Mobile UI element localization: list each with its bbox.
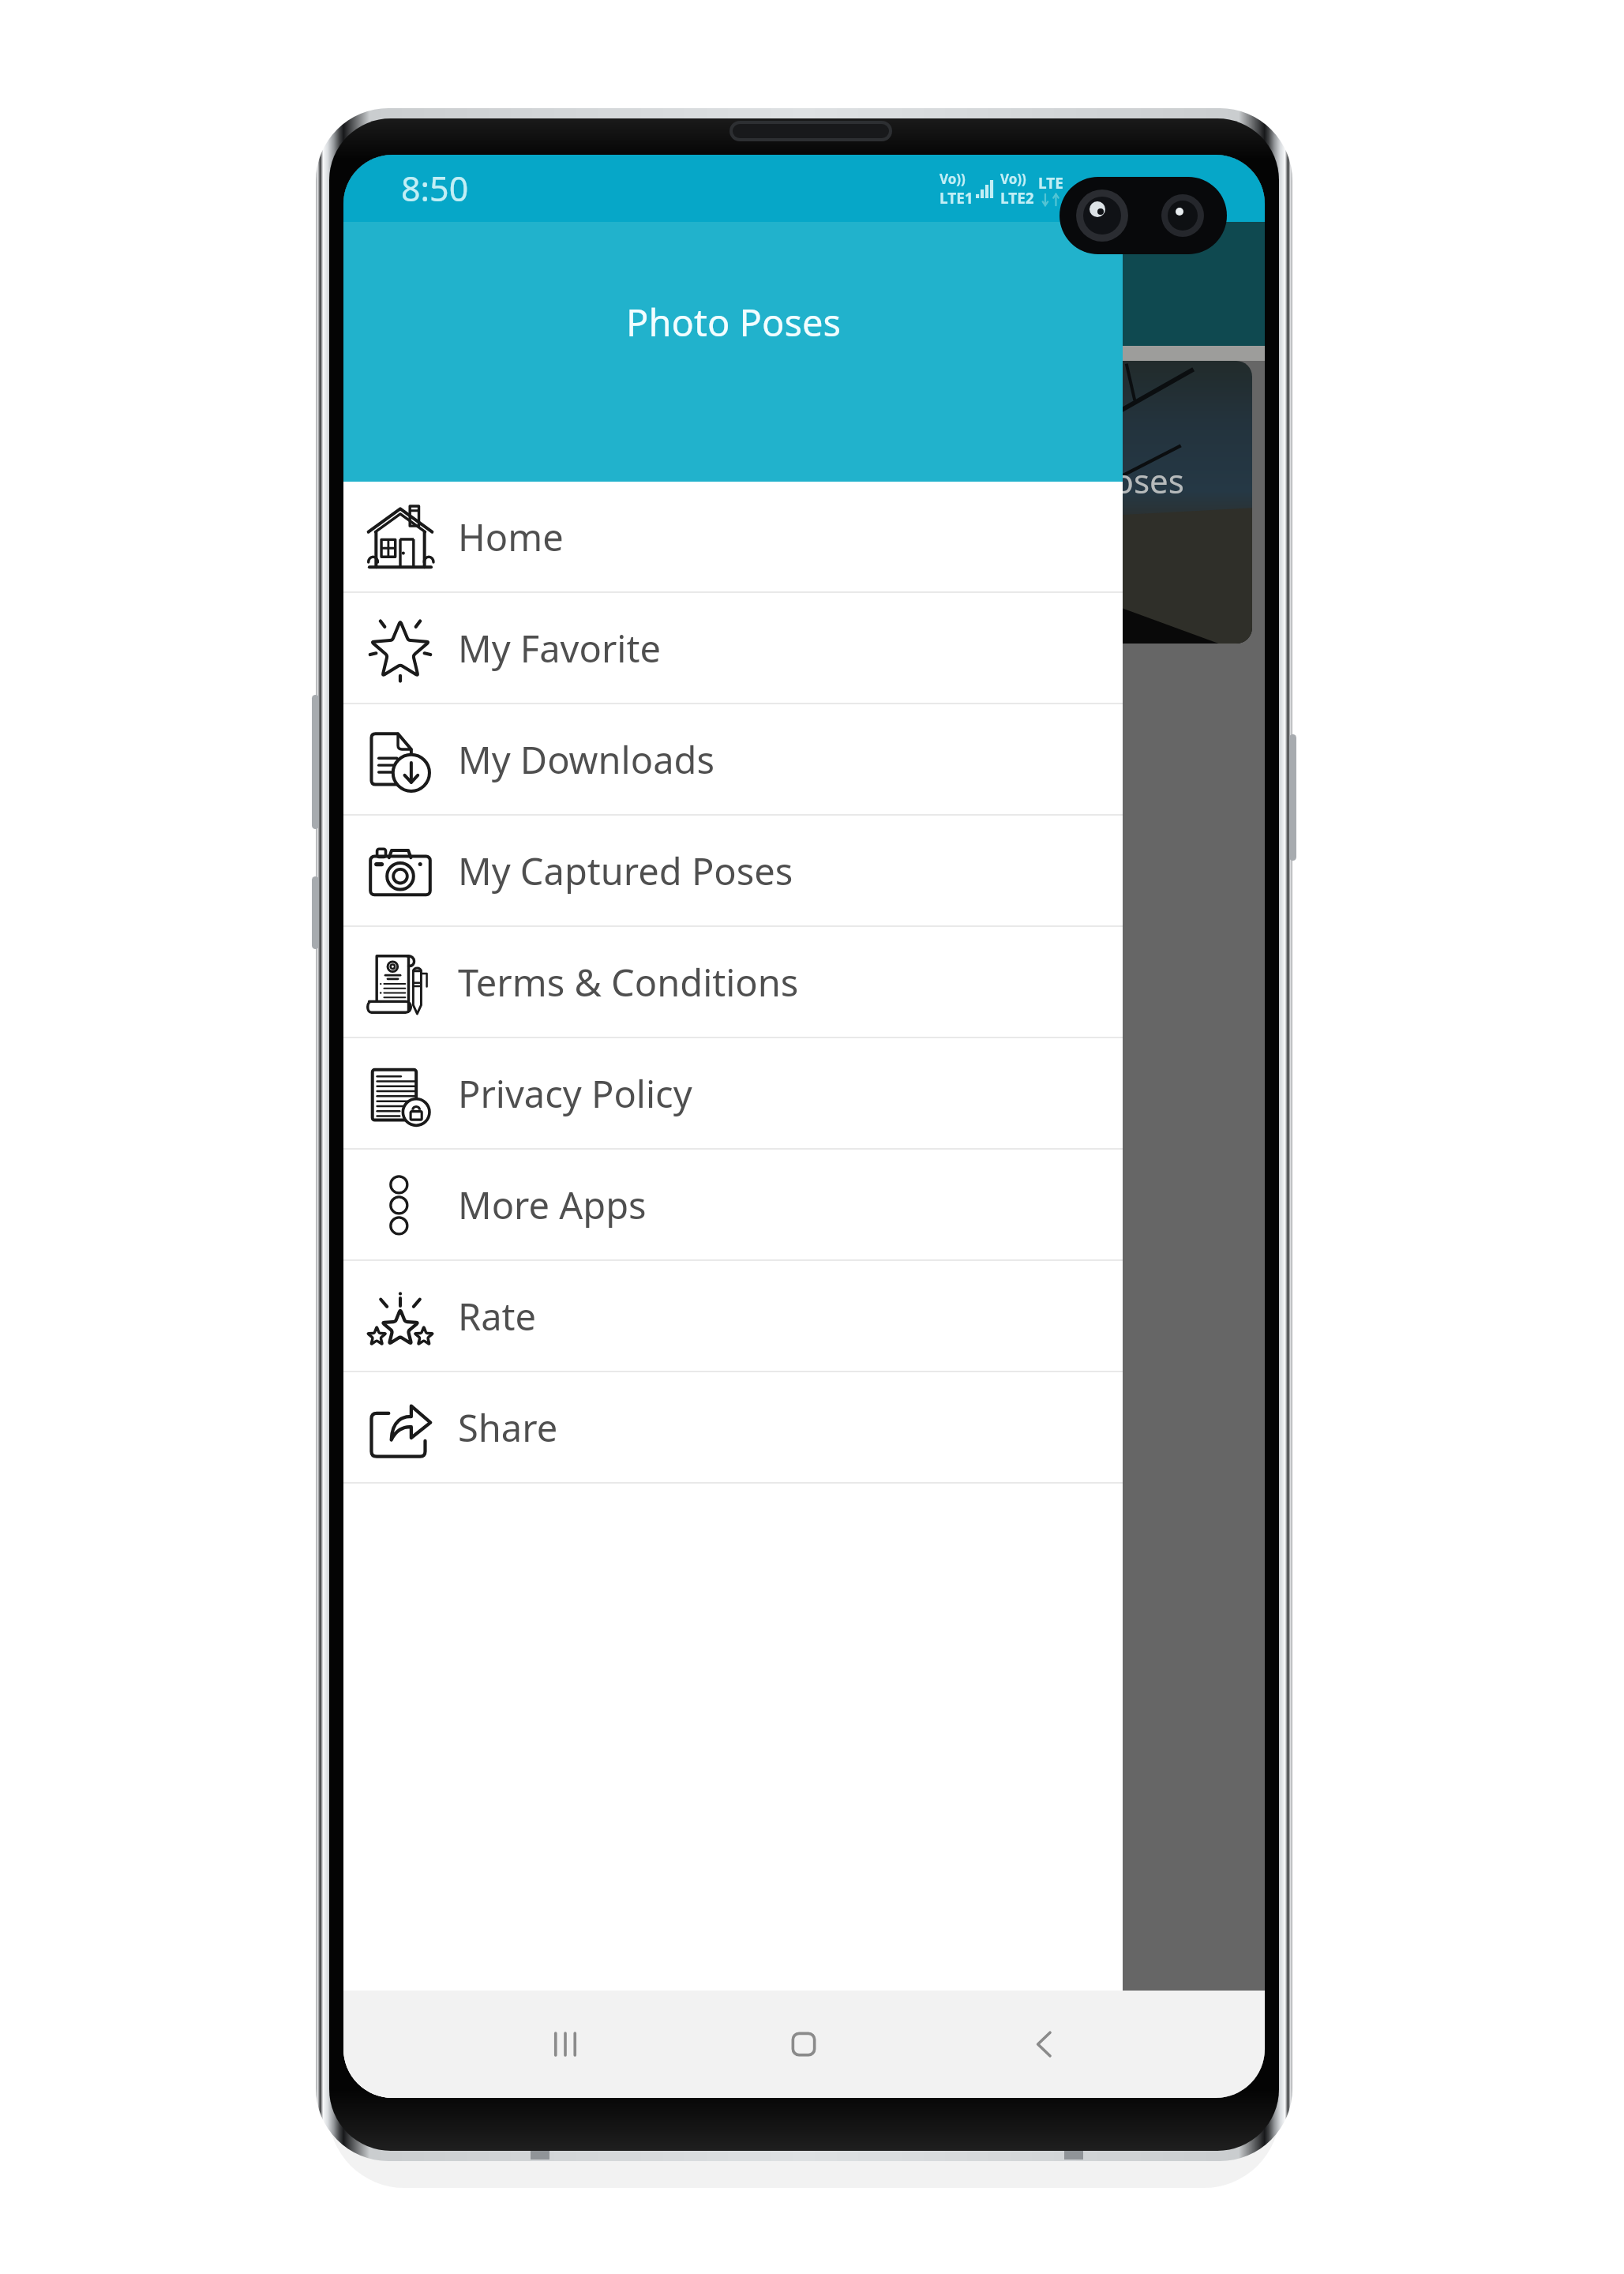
- button[interactable]: My Favorite: [343, 593, 1123, 703]
- staticText: Photo Poses: [626, 297, 841, 347]
- staticText: Rate: [458, 1291, 537, 1342]
- button[interactable]: Privacy Policy: [343, 1038, 1123, 1148]
- staticText: My Captured Poses: [458, 846, 793, 896]
- button[interactable]: Back: [973, 1991, 1116, 2098]
- staticText: LTE1: [940, 188, 973, 208]
- button[interactable]: Rate: [343, 1261, 1123, 1371]
- button[interactable]: Share: [343, 1372, 1123, 1482]
- staticText: Couple Poses: [976, 458, 1184, 503]
- button[interactable]: Recents: [494, 1991, 636, 2098]
- staticText: My Downloads: [458, 734, 714, 785]
- staticText: LTE2: [1000, 188, 1034, 208]
- staticText: LTE: [1038, 173, 1063, 193]
- button[interactable]: My Captured Poses: [343, 816, 1123, 925]
- staticText: Terms & Conditions: [458, 957, 799, 1008]
- staticText: 8:50: [401, 165, 469, 212]
- button[interactable]: Terms & Conditions: [343, 927, 1123, 1037]
- staticText: Vo)): [1000, 170, 1026, 188]
- staticText: More Apps: [458, 1180, 647, 1230]
- button[interactable]: My Downloads: [343, 704, 1123, 814]
- button[interactable]: Home: [733, 1991, 875, 2098]
- button[interactable]: Home: [343, 482, 1123, 591]
- staticText: My Favorite: [458, 623, 661, 674]
- staticText: Home: [458, 512, 564, 562]
- staticText: Share: [458, 1402, 558, 1453]
- staticText: Vo)): [940, 170, 966, 188]
- button[interactable]: More Apps: [343, 1150, 1123, 1259]
- staticText: Privacy Policy: [458, 1068, 692, 1119]
